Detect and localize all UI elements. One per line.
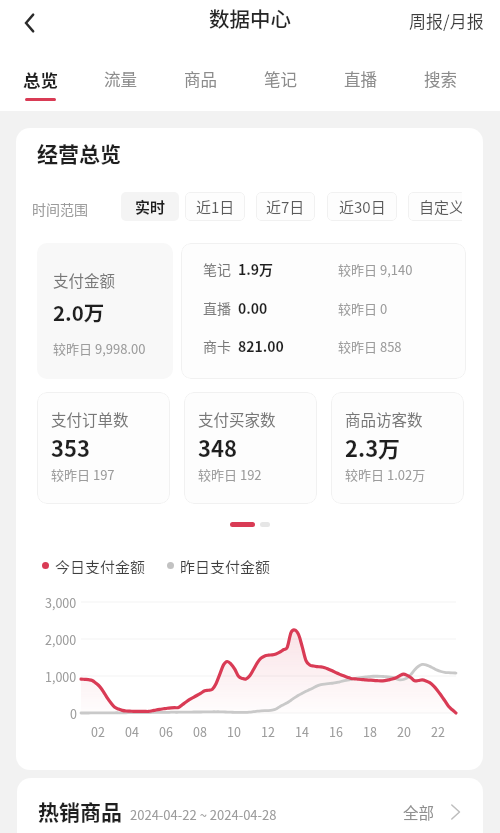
staticText: 笔记 [203, 259, 231, 279]
staticText: 支付买家数 [198, 408, 276, 430]
staticText: 较昨日 9,140 [338, 260, 413, 279]
staticText: 较昨日 197 [51, 465, 115, 484]
staticText: 较昨日 0 [338, 299, 388, 318]
staticText: 04 [125, 722, 139, 740]
button[interactable]: 支付买家数 [184, 392, 317, 504]
staticText: 近7日 [266, 196, 305, 218]
staticText: 商卡 [203, 336, 231, 356]
staticText: 经营总览 [37, 138, 121, 168]
staticText: 数据中心 [209, 3, 291, 33]
button[interactable]: 商品 [168, 58, 232, 104]
staticText: 较昨日 9,998.00 [53, 339, 146, 358]
staticText: 实时 [135, 196, 166, 218]
staticText: 近1日 [196, 196, 235, 218]
staticText: 直播 [203, 298, 231, 318]
staticText: 1.9万 [238, 259, 274, 279]
staticText: 02 [91, 722, 105, 740]
staticText: 商品 [184, 67, 217, 91]
staticText: 22 [431, 722, 445, 740]
button[interactable]: 笔记 [181, 243, 466, 379]
button[interactable]: 实时 [121, 192, 179, 221]
staticText: 0 [70, 704, 77, 722]
staticText: 14 [295, 722, 309, 740]
staticText: 2,000 [45, 630, 77, 648]
staticText: 自定义 [419, 196, 462, 218]
staticText: 2024-04-22 ~ 2024-04-28 [130, 805, 277, 824]
staticText: 支付金额 [53, 269, 116, 291]
staticText: 商品访客数 [345, 408, 423, 430]
staticText: 2.3万 [345, 431, 401, 463]
button[interactable]: 周报/月报 [393, 0, 500, 41]
staticText: 348 [198, 431, 237, 463]
button[interactable]: 流量 [88, 58, 152, 104]
staticText: 较昨日 1.02万 [345, 465, 426, 484]
staticText: 2.0万 [53, 297, 105, 327]
button[interactable]: 近7日 [256, 192, 315, 221]
staticText: 时间范围 [32, 199, 88, 219]
staticText: 支付订单数 [51, 408, 129, 430]
staticText: 今日支付金额 [55, 556, 146, 574]
staticText: 08 [193, 722, 207, 740]
button[interactable]: 近1日 [185, 192, 245, 221]
staticText: 20 [397, 722, 411, 740]
staticText: 0.00 [238, 298, 268, 318]
staticText: 近30日 [339, 196, 386, 218]
staticText: 821.00 [238, 336, 284, 356]
staticText: 搜索 [424, 67, 457, 91]
staticText: 较昨日 858 [338, 337, 402, 356]
staticText: 周报/月报 [409, 8, 484, 33]
staticText: 06 [159, 722, 173, 740]
staticText: 353 [51, 431, 90, 463]
button[interactable]: 近30日 [327, 192, 397, 221]
staticText: 10 [227, 722, 241, 740]
staticText: 热销商品 [38, 796, 122, 826]
button[interactable]: 支付金额 [37, 243, 173, 379]
staticText: 昨日支付金额 [180, 556, 271, 574]
button[interactable]: 自定义 [408, 192, 462, 221]
staticText: 直播 [344, 67, 377, 91]
staticText: 12 [261, 722, 275, 740]
staticText: 全部 [403, 801, 435, 823]
button[interactable]: 全部 [403, 798, 463, 826]
staticText: 总览 [23, 67, 58, 92]
staticText: 较昨日 192 [198, 465, 262, 484]
staticText: 流量 [104, 67, 137, 91]
button[interactable]: 支付订单数 [37, 392, 170, 504]
button[interactable]: 总览 [8, 58, 72, 104]
staticText: 1,000 [45, 667, 77, 685]
staticText: 笔记 [264, 67, 297, 91]
staticText: 18 [363, 722, 377, 740]
button[interactable]: Back [8, 1, 52, 45]
button[interactable]: 搜索 [408, 58, 472, 104]
button[interactable]: 笔记 [248, 58, 312, 104]
staticText: 16 [329, 722, 343, 740]
button[interactable]: 直播 [328, 58, 392, 104]
button[interactable]: 商品访客数 [331, 392, 464, 504]
staticText: 3,000 [45, 593, 77, 611]
